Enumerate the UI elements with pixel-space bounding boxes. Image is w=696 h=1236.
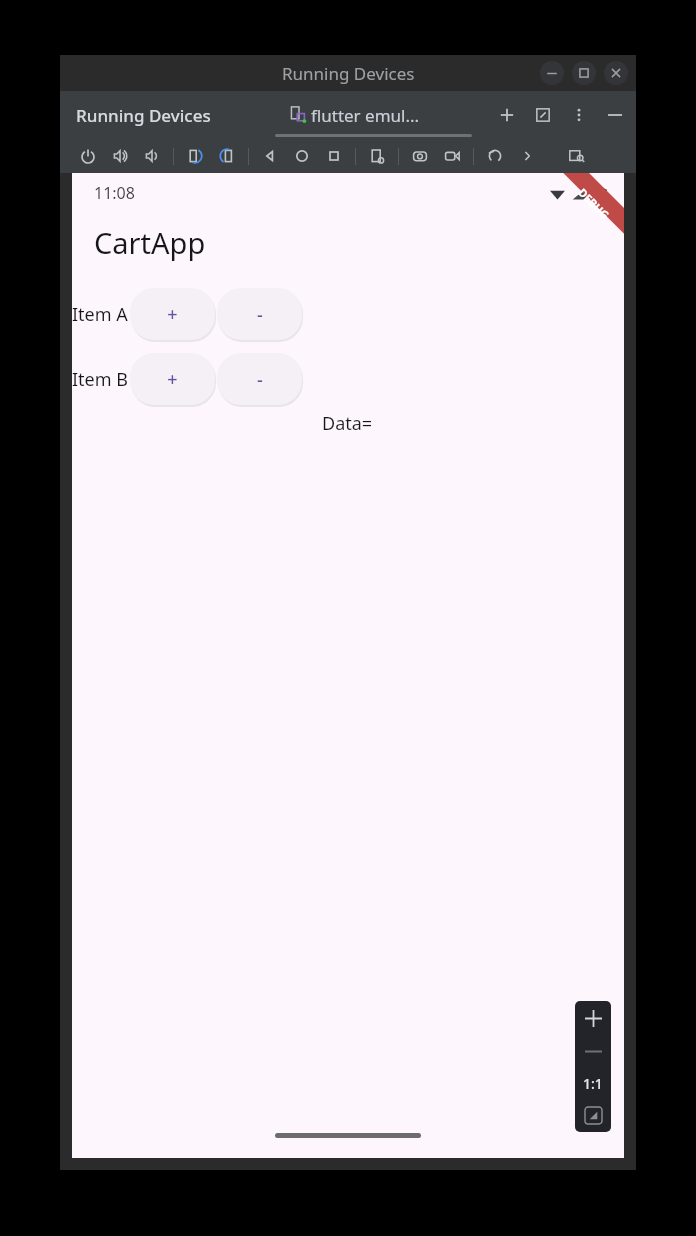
button[interactable]: Device settings — [361, 140, 393, 172]
staticText: Running Devices — [76, 104, 211, 127]
button[interactable]: - — [217, 288, 302, 340]
staticText: + — [167, 367, 178, 392]
button[interactable]: Fit to screen — [575, 1099, 611, 1132]
staticText: - — [257, 302, 263, 327]
button[interactable]: Overview — [318, 140, 350, 172]
staticText: flutter emul... — [311, 104, 420, 127]
button[interactable]: + — [130, 353, 215, 405]
button[interactable]: Rotate left — [179, 140, 211, 172]
button[interactable]: More — [511, 140, 543, 172]
staticText: - — [257, 367, 263, 392]
button[interactable]: Power — [72, 140, 104, 172]
staticText: Data= — [322, 411, 373, 436]
button[interactable]: Maximize — [572, 61, 596, 85]
button[interactable]: Zoom in — [575, 1001, 611, 1035]
staticText: + — [167, 302, 178, 327]
staticText: 11:08 — [94, 182, 135, 204]
button[interactable]: Restore — [479, 140, 511, 172]
staticText: DEBUG — [575, 185, 613, 222]
button[interactable]: Hide tool window — [532, 104, 554, 126]
button[interactable]: Add device — [496, 104, 518, 126]
button[interactable]: flutter emul... — [290, 91, 420, 139]
staticText: CartApp — [94, 223, 206, 262]
button[interactable]: Rotate right — [211, 140, 243, 172]
button[interactable]: More options — [568, 104, 590, 126]
button[interactable]: Inspect — [561, 140, 593, 172]
button[interactable]: Zoom out — [575, 1035, 611, 1067]
staticText: Item B — [72, 367, 128, 392]
button[interactable]: Volume down — [136, 140, 168, 172]
button[interactable]: Volume up — [104, 140, 136, 172]
button[interactable]: Back — [254, 140, 286, 172]
staticText: 1:1 — [583, 1074, 603, 1093]
button[interactable]: - — [217, 353, 302, 405]
staticText: Running Devices — [282, 62, 415, 85]
button[interactable]: 1:1 — [575, 1067, 611, 1099]
button[interactable]: Home — [286, 140, 318, 172]
button[interactable]: Minimize tool window — [604, 104, 626, 126]
button[interactable]: Close — [604, 61, 628, 85]
button[interactable]: Minimize — [540, 61, 564, 85]
staticText: Item A — [72, 302, 128, 327]
button[interactable]: Record screen — [436, 140, 468, 172]
button[interactable]: Screenshot — [404, 140, 436, 172]
button[interactable]: + — [130, 288, 215, 340]
